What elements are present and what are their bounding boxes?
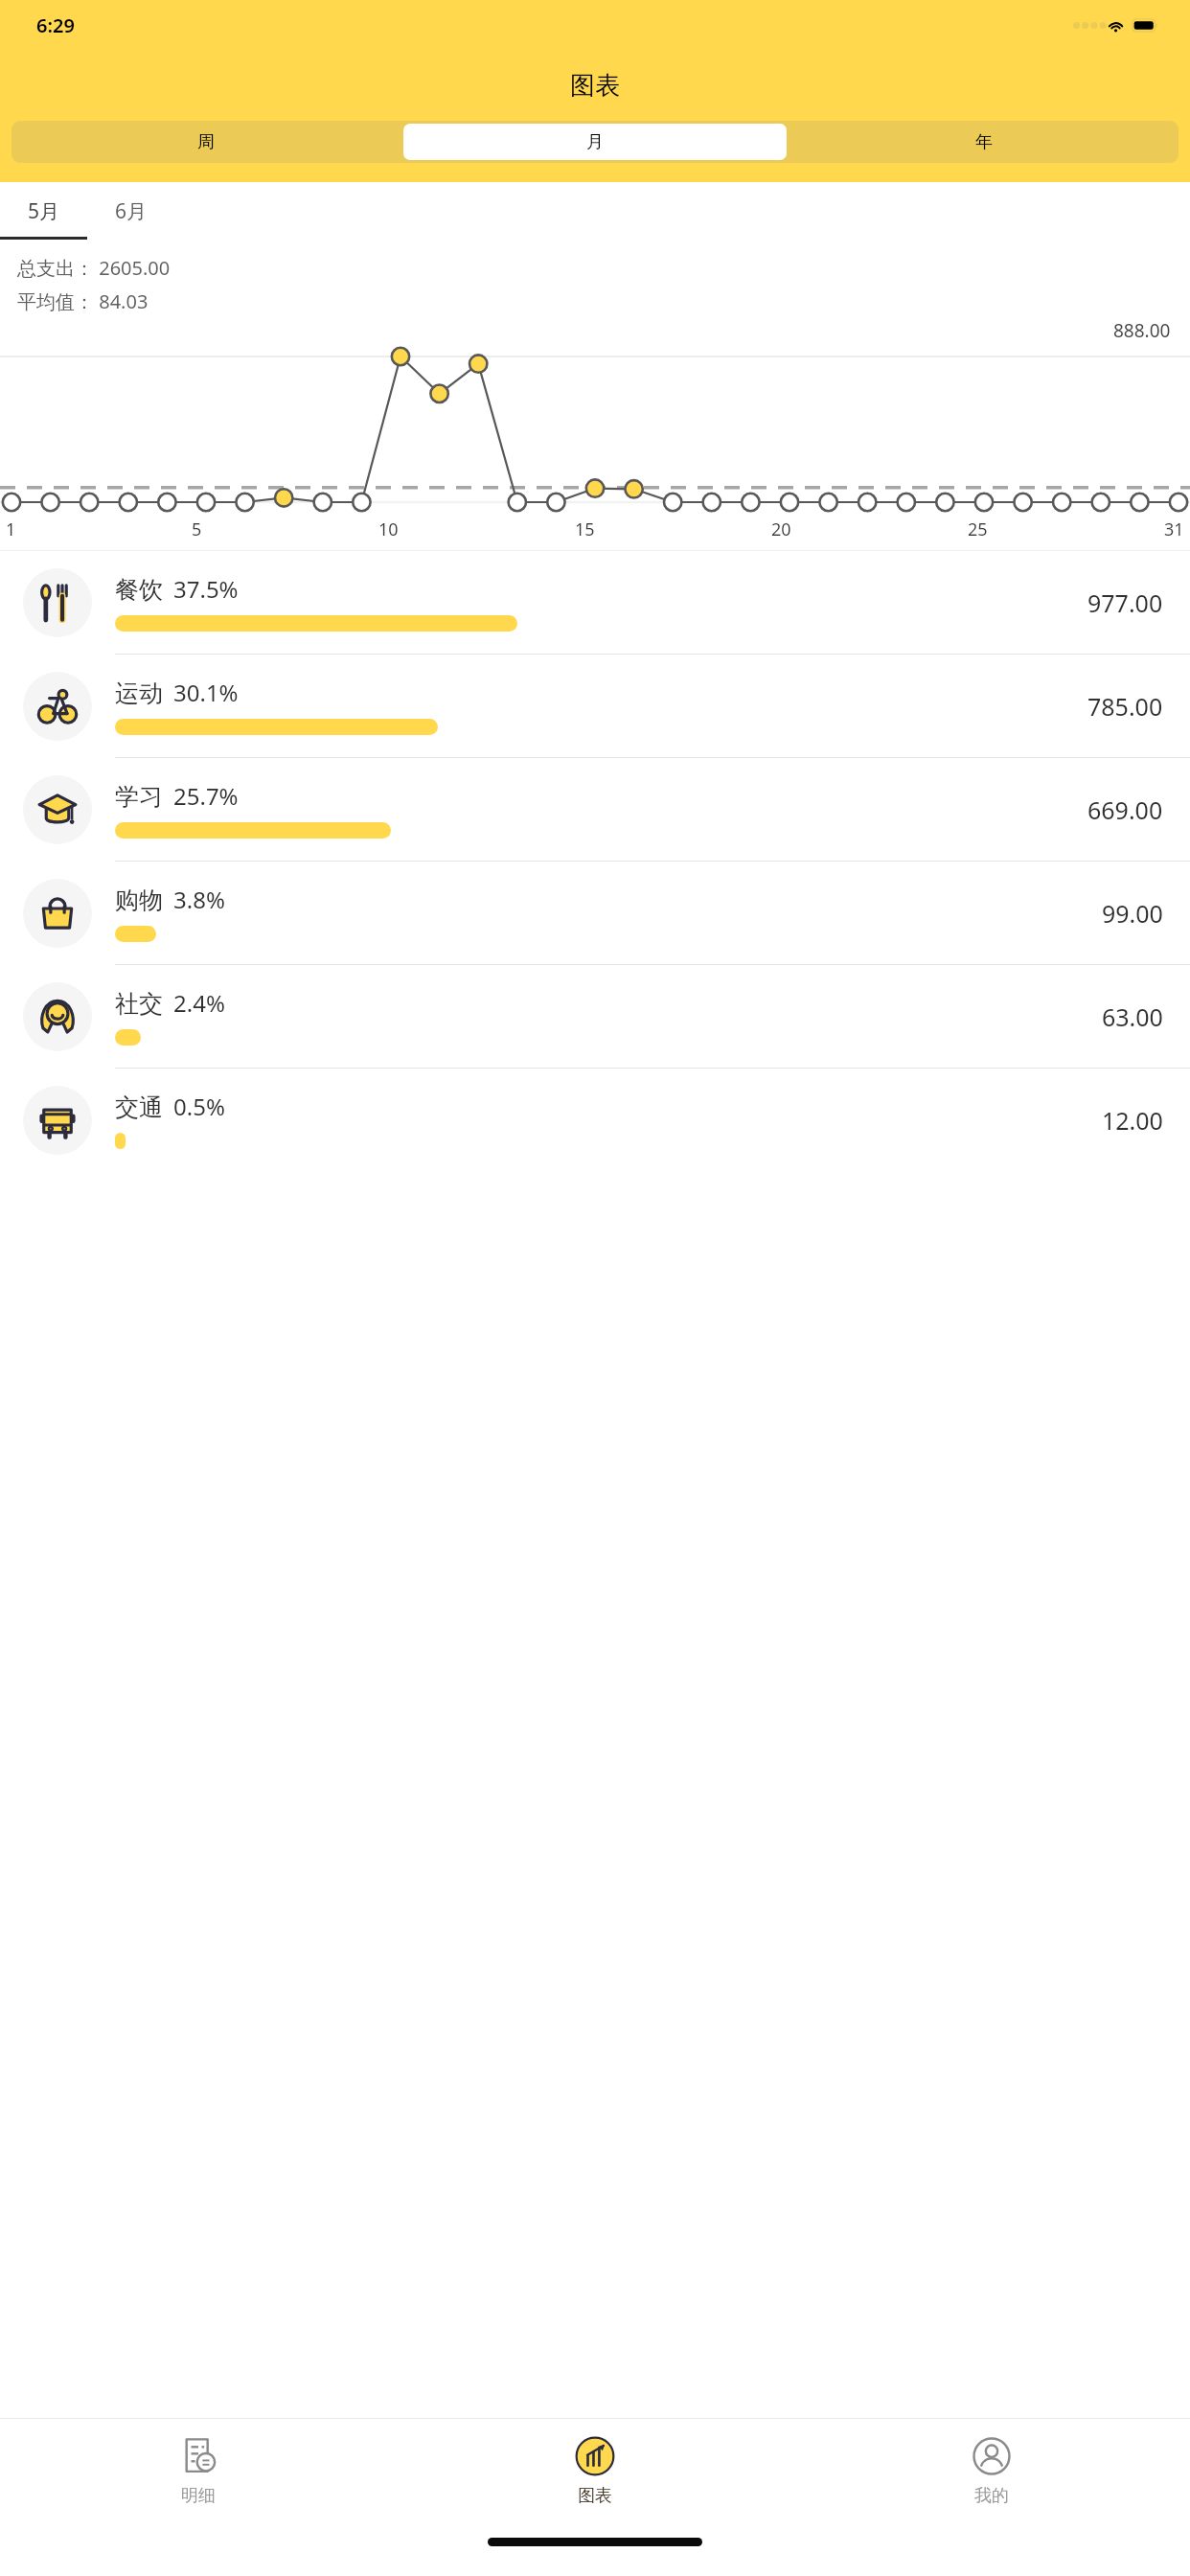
staticText: 明细 <box>181 2485 216 2507</box>
staticText: 785.00 <box>1087 690 1163 723</box>
staticText: 3.8% <box>173 884 225 915</box>
staticText: 5 <box>192 517 202 541</box>
staticText: 31 <box>1164 517 1184 541</box>
staticText: 我的 <box>974 2485 1009 2507</box>
button[interactable]: 学习 <box>0 758 1190 861</box>
button[interactable]: 6月 <box>87 182 174 240</box>
staticText: 20 <box>771 517 791 541</box>
staticText: 图表 <box>578 2485 612 2507</box>
staticText: 99.00 <box>1102 897 1163 930</box>
staticText: 977.00 <box>1087 586 1163 619</box>
staticText: 购物 <box>115 885 163 915</box>
staticText: 图表 <box>570 70 620 102</box>
staticText: 63.00 <box>1102 1000 1163 1033</box>
button[interactable]: 交通 <box>0 1069 1190 1171</box>
button[interactable]: 餐饮 <box>0 551 1190 654</box>
staticText: 年 <box>975 131 993 153</box>
staticText: 月 <box>586 131 604 153</box>
staticText: 交通 <box>115 1092 163 1122</box>
staticText: 15 <box>575 517 595 541</box>
staticText: 平均值： 84.03 <box>17 288 149 314</box>
staticText: 669.00 <box>1087 793 1163 826</box>
staticText: 学习 <box>115 782 163 812</box>
staticText: 37.5% <box>173 573 239 605</box>
staticText: 0.5% <box>173 1091 225 1122</box>
staticText: 运动 <box>115 678 163 708</box>
button[interactable]: 购物 <box>0 862 1190 964</box>
button[interactable]: 月 <box>403 124 787 160</box>
staticText: 25 <box>968 517 988 541</box>
staticText: 10 <box>378 517 399 541</box>
button[interactable]: 年 <box>792 124 1176 160</box>
button[interactable]: 我的 <box>793 2419 1190 2522</box>
staticText: 周 <box>197 131 215 153</box>
staticText: 2.4% <box>173 987 225 1019</box>
button[interactable]: 5月 <box>0 182 87 240</box>
staticText: 5月 <box>28 197 60 225</box>
staticText: 社交 <box>115 989 163 1019</box>
staticText: 6:29 <box>36 12 75 38</box>
staticText: 12.00 <box>1102 1104 1163 1137</box>
staticText: 1 <box>6 517 16 541</box>
button[interactable]: 图表 <box>397 2419 793 2522</box>
button[interactable]: 社交 <box>0 965 1190 1068</box>
staticText: 餐饮 <box>115 575 163 605</box>
button[interactable]: 周 <box>14 124 398 160</box>
staticText: 888.00 <box>1113 318 1171 343</box>
staticText: 30.1% <box>173 677 239 708</box>
staticText: 总支出： 2605.00 <box>17 255 171 281</box>
staticText: 25.7% <box>173 780 239 812</box>
button[interactable]: 运动 <box>0 655 1190 757</box>
staticText: 6月 <box>115 197 148 225</box>
button[interactable]: 明细 <box>0 2419 397 2522</box>
